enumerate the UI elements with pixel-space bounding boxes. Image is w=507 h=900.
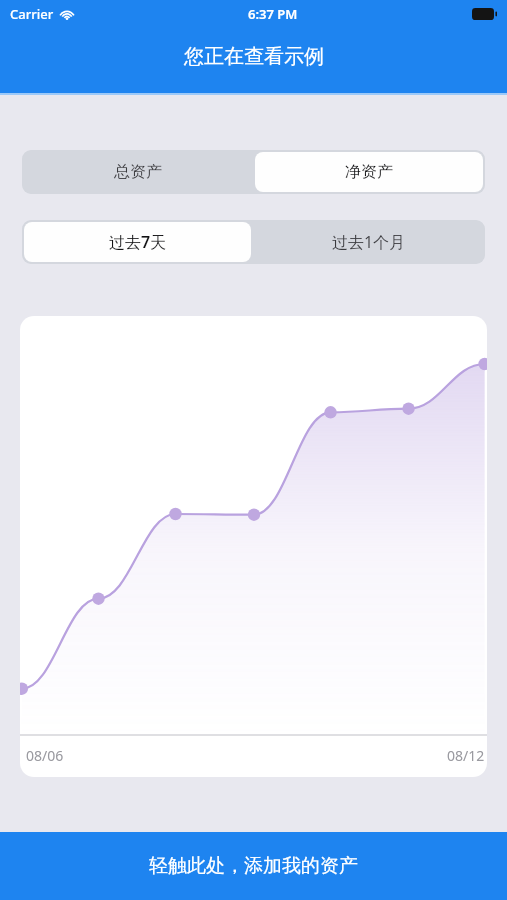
staticText: 总资产	[114, 162, 162, 182]
staticText: 过去1个月	[332, 231, 406, 253]
button[interactable]: 总资产	[24, 152, 251, 192]
button[interactable]: 净资产	[255, 152, 483, 192]
staticText: 过去7天	[109, 231, 167, 253]
button[interactable]: 轻触此处，添加我的资产	[0, 832, 507, 900]
staticText: 净资产	[345, 162, 393, 182]
staticText: 08/06	[26, 746, 64, 765]
button[interactable]: 过去7天	[24, 222, 251, 262]
staticText: 轻触此处，添加我的资产	[149, 854, 358, 878]
staticText: 6:37 PM	[248, 5, 298, 23]
staticText: Carrier	[10, 5, 54, 23]
other: Net asset chart	[20, 316, 487, 777]
button[interactable]: 过去1个月	[255, 222, 483, 262]
button[interactable]: Net asset chart	[20, 316, 487, 777]
staticText: 您正在查看示例	[184, 44, 324, 69]
staticText: 08/12	[447, 746, 485, 765]
